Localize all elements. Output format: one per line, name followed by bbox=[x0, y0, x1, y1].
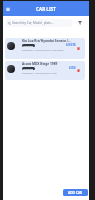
button[interactable]: Kia Lux Rio/Hyundai Sonata /... bbox=[5, 38, 85, 59]
button[interactable]: Acura MDX Beige 1989 bbox=[5, 61, 85, 80]
button[interactable]: ADD CAR bbox=[63, 189, 88, 196]
button[interactable]: Search by Car, Model, plate... bbox=[6, 19, 72, 27]
staticText: Search by Car, Model, plate... bbox=[12, 21, 54, 25]
button[interactable]: Delete bbox=[76, 46, 81, 51]
staticText: Available bbox=[23, 44, 34, 47]
staticText: Acura MDX Beige 1989 bbox=[22, 62, 58, 66]
button[interactable]: Menu bbox=[5, 6, 11, 12]
staticText: Booking: 11/05/2020 to 11/05/2020 bbox=[22, 48, 64, 51]
staticText: Available bbox=[23, 67, 34, 70]
staticText: Kia Lux Rio/Hyundai Sonata /... bbox=[22, 39, 71, 43]
button[interactable]: Delete bbox=[76, 68, 81, 73]
staticText: 6/50 bbox=[69, 66, 76, 70]
staticText: 6/$315 bbox=[66, 43, 76, 47]
staticText: Booking: 11/05/2020 to 11/05 bbox=[22, 71, 57, 74]
button[interactable]: Filter bbox=[76, 19, 83, 26]
staticText: ADD CAR bbox=[68, 191, 83, 195]
staticText: CAR LIST bbox=[36, 6, 56, 12]
